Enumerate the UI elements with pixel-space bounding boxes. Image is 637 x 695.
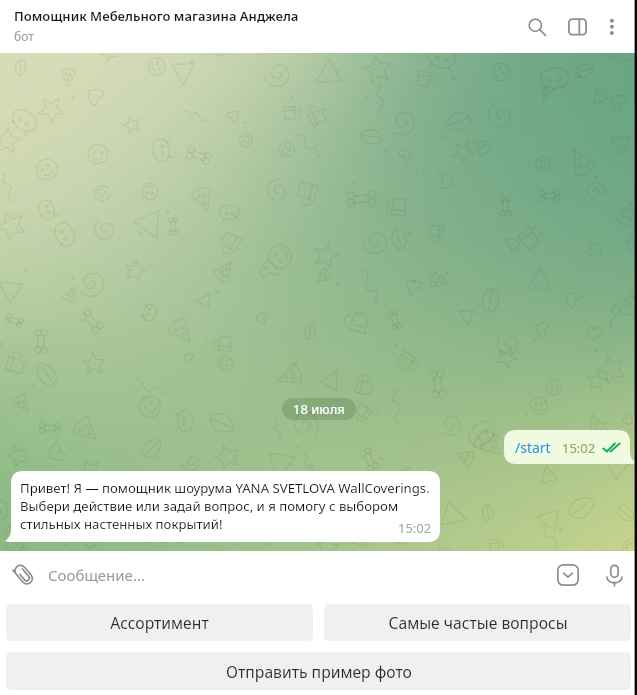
staticText: 15:02 [398,519,432,537]
button[interactable]: Самые частые вопросы [324,604,631,641]
button[interactable]: Attach file [0,551,48,598]
staticText: Отправить пример фото [226,661,412,682]
button[interactable]: Show keyboard [545,552,591,598]
button[interactable]: Toggle sidebar [556,5,598,47]
staticText: Привет! Я — помощник шоурума YANA SVETLO… [20,479,431,533]
button[interactable]: Ассортимент [6,604,313,641]
staticText: Ассортимент [110,612,209,633]
button[interactable]: Search [514,5,556,47]
staticText: Помощник Мебельного магазина Анджела [14,7,299,25]
staticText: /start [515,438,551,457]
staticText: Самые частые вопросы [388,612,568,633]
staticText: бот [14,28,34,44]
button[interactable]: More options [592,5,632,45]
button[interactable]: Отправить пример фото [6,652,631,690]
staticText: 15:02 [562,439,596,457]
staticText: 18 июля [293,400,345,418]
button[interactable]: Record voice message [591,552,637,598]
staticText: Сообщение... [48,565,145,585]
